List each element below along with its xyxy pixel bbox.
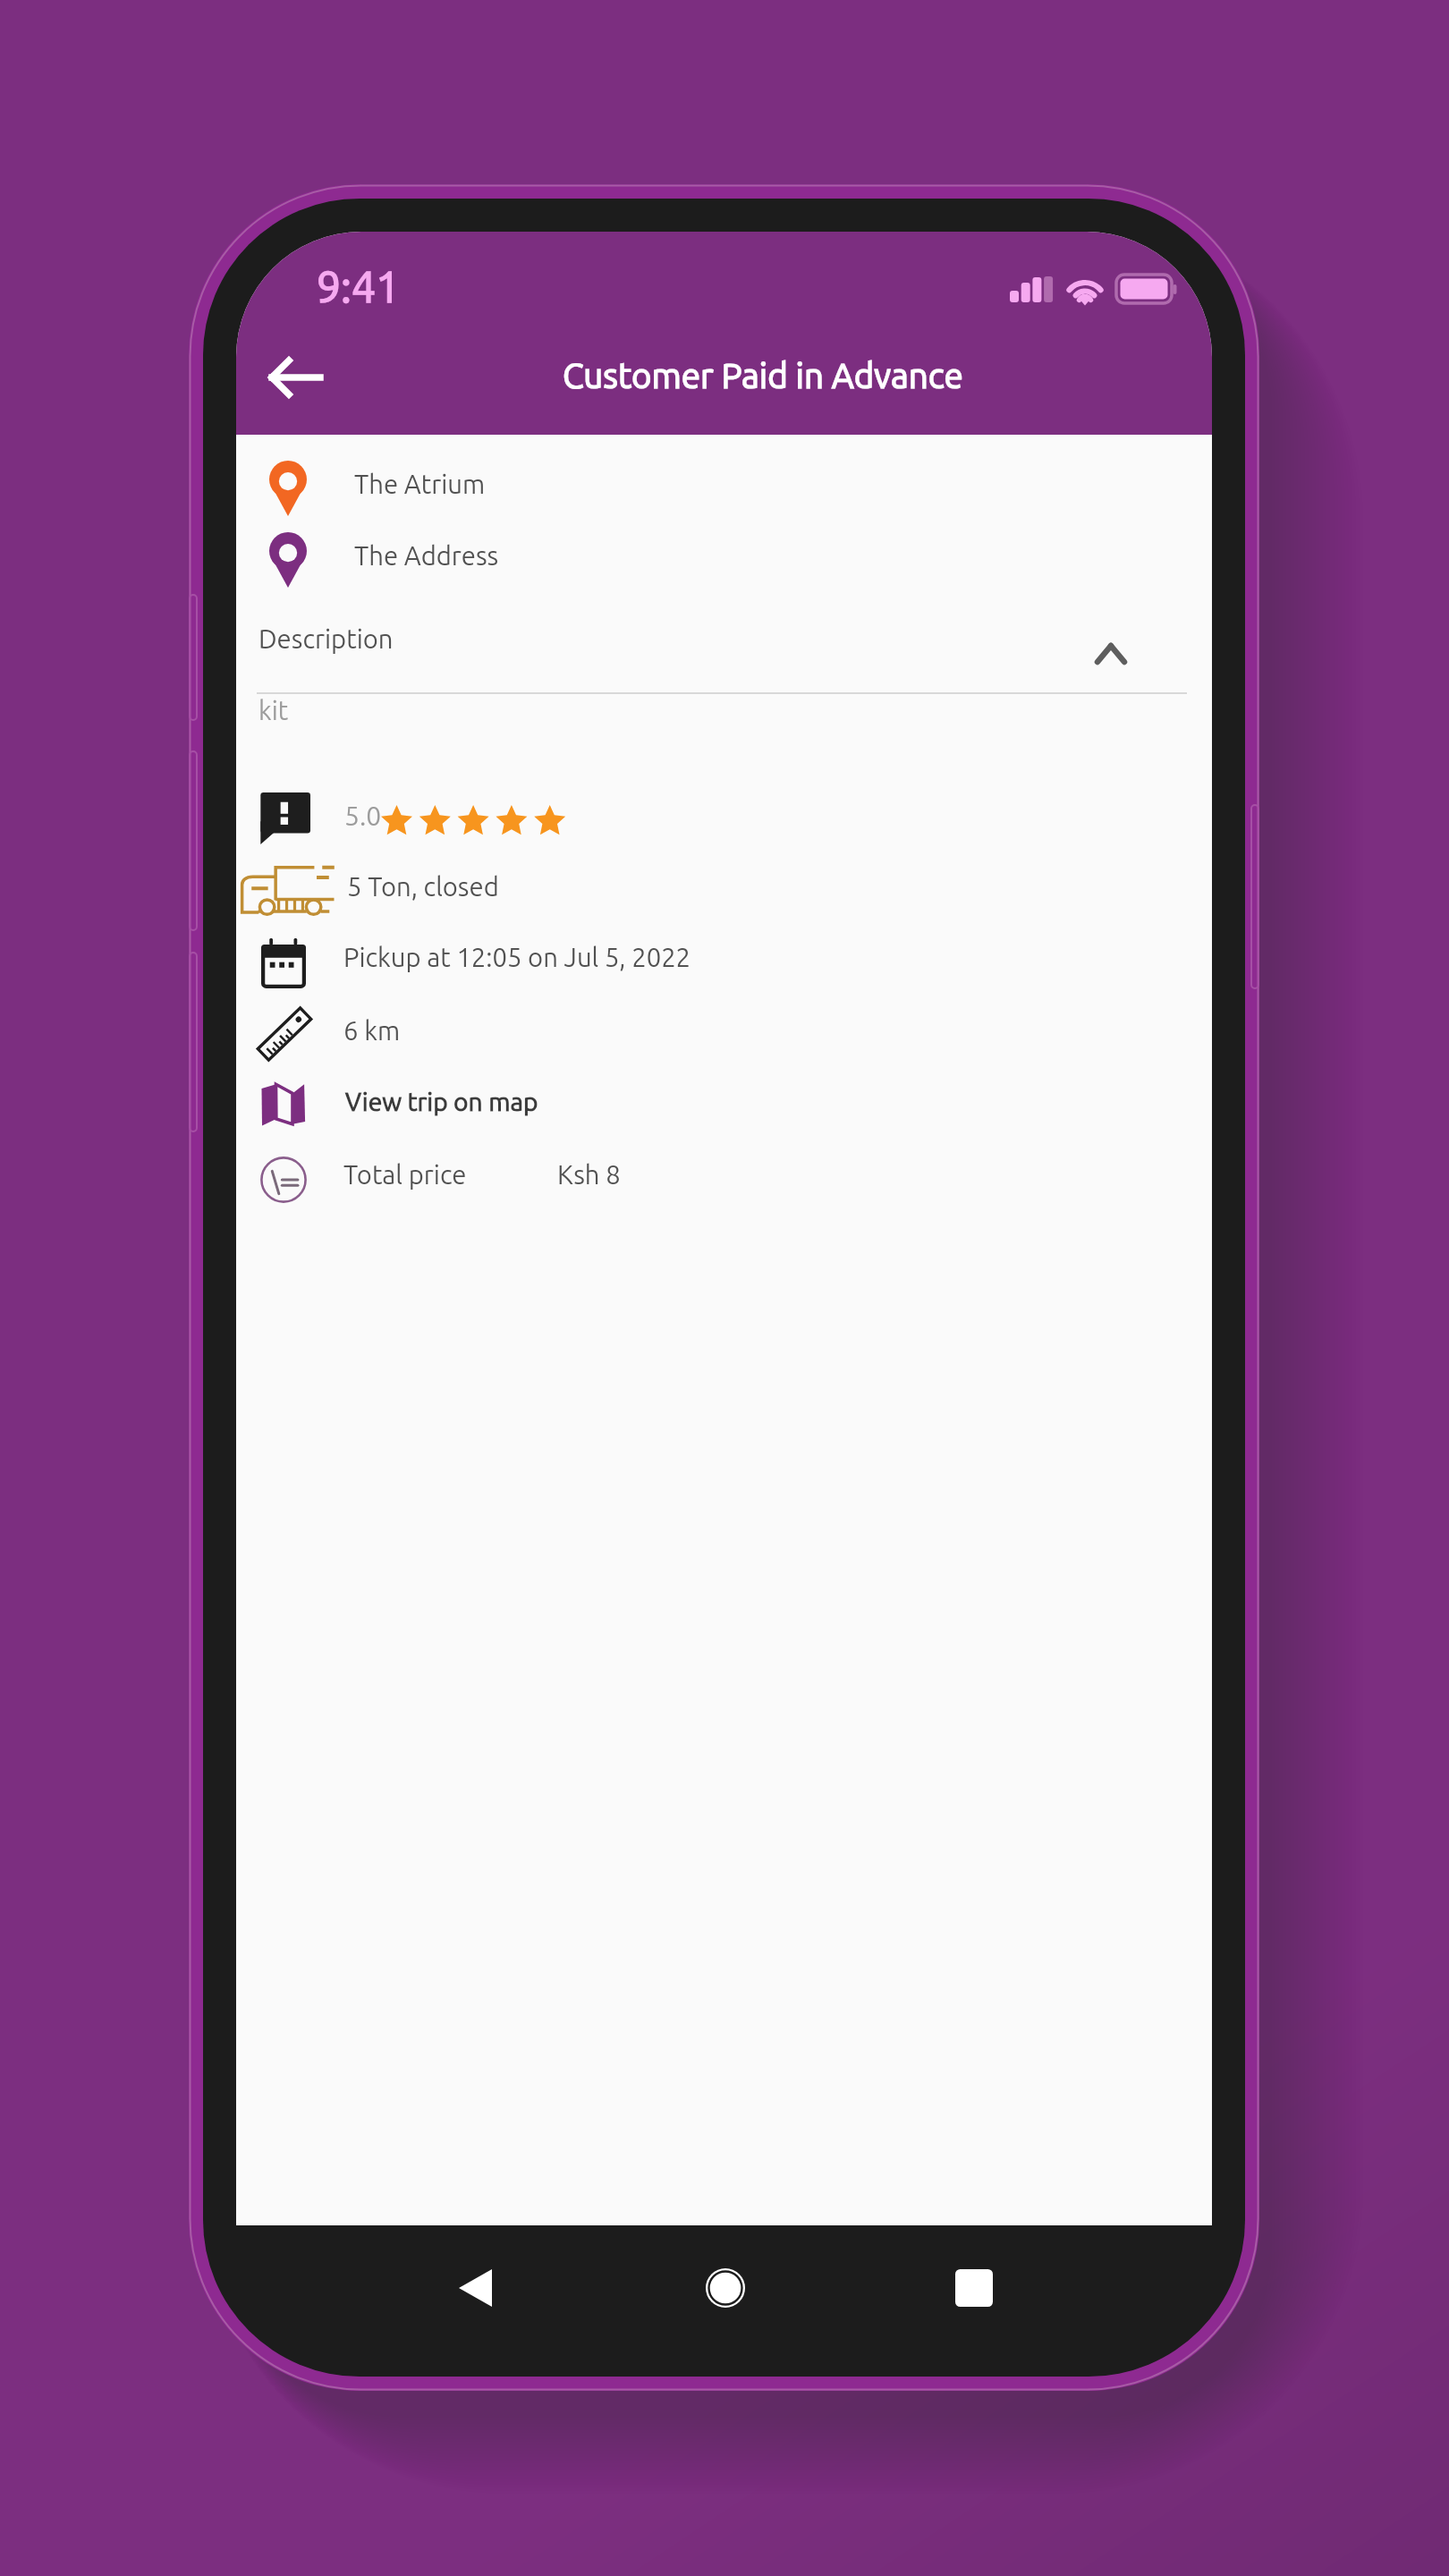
staticText: Pickup at 12:05 on Jul 5, 2022	[343, 943, 691, 972]
staticText: Customer Paid in Advance	[563, 356, 963, 394]
staticText: 6 km	[343, 1016, 401, 1046]
staticText: The Atrium	[354, 470, 486, 499]
button[interactable]: Back	[439, 2245, 511, 2331]
button[interactable]: View trip on map	[236, 1072, 1212, 1137]
button[interactable]: Back	[252, 335, 338, 419]
staticText: Description	[258, 624, 394, 654]
button[interactable]: The Atrium	[236, 454, 1212, 524]
staticText: View trip on map	[345, 1088, 538, 1116]
staticText: Total price	[343, 1160, 467, 1190]
staticText: 5 Ton, closed	[347, 872, 499, 902]
button[interactable]: Recent apps	[938, 2245, 1010, 2331]
staticText: The Address	[354, 541, 499, 571]
staticText: kit	[258, 696, 289, 725]
staticText: 5.0	[344, 801, 382, 831]
staticText: Ksh 8	[557, 1160, 621, 1190]
staticText: 9:41	[317, 262, 401, 310]
button[interactable]: Home	[690, 2245, 761, 2331]
button[interactable]: The Address	[236, 526, 1212, 596]
button[interactable]: Description	[236, 612, 1212, 680]
